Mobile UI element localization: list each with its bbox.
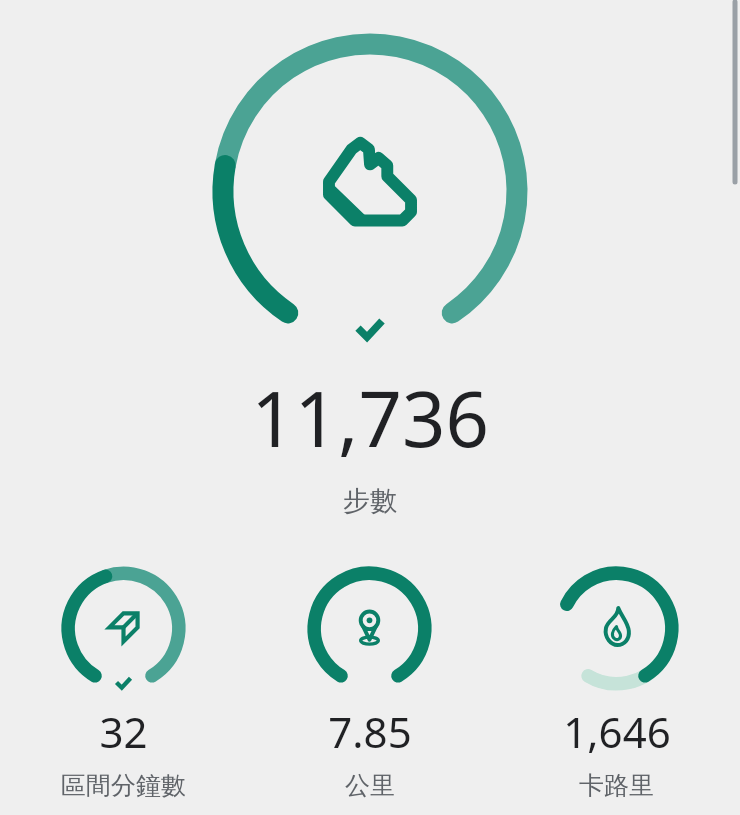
staticText: 32 bbox=[99, 703, 148, 760]
other: 卡路里 bbox=[544, 556, 689, 701]
staticText: 7.85 bbox=[328, 703, 412, 760]
button[interactable]: 步數 11,736 bbox=[200, 16, 540, 356]
button[interactable]: 區間分鐘數 bbox=[0, 556, 246, 801]
staticText: 11,736 bbox=[251, 366, 489, 470]
staticText: 1,646 bbox=[563, 703, 671, 760]
other: 區間分鐘數 bbox=[51, 556, 196, 701]
staticText: 區間分鐘數 bbox=[61, 770, 186, 801]
staticText: 公里 bbox=[345, 770, 395, 801]
staticText: 卡路里 bbox=[579, 770, 654, 801]
other: 公里 bbox=[297, 556, 442, 701]
button[interactable]: 公里 bbox=[246, 556, 493, 801]
staticText: 步數 bbox=[343, 484, 397, 518]
button[interactable]: 卡路里 bbox=[493, 556, 740, 801]
